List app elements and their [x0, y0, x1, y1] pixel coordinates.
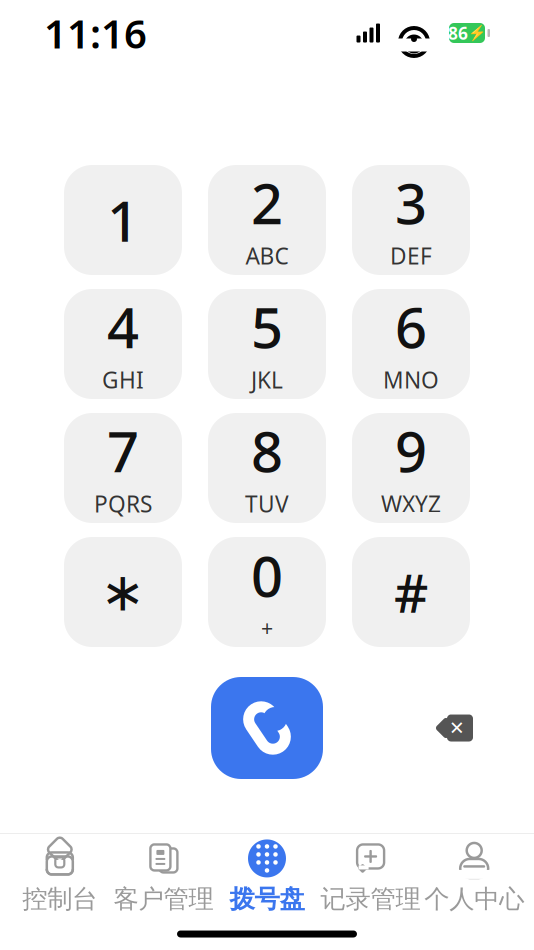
staticText: TUV: [245, 489, 289, 519]
staticText: 拨号盘: [229, 883, 304, 914]
staticText: 11:16: [44, 6, 147, 59]
staticText: 8: [251, 413, 283, 488]
staticText: +: [261, 613, 273, 642]
staticText: GHI: [102, 365, 144, 395]
staticText: ABC: [245, 241, 288, 271]
button[interactable]: 记录管理: [319, 831, 422, 920]
button[interactable]: 个人中心: [422, 831, 526, 920]
button[interactable]: #: [352, 537, 470, 647]
staticText: 记录管理: [321, 883, 421, 914]
staticText: 客户管理: [113, 883, 213, 914]
staticText: 0: [251, 538, 283, 613]
staticText: #: [394, 557, 428, 627]
staticText: 9: [395, 413, 427, 488]
staticText: PQRS: [94, 489, 152, 519]
button[interactable]: 5: [208, 289, 326, 399]
staticText: DEF: [390, 241, 432, 271]
staticText: MNO: [383, 365, 439, 395]
button[interactable]: 控制台: [8, 831, 112, 920]
staticText: 2: [251, 165, 283, 240]
staticText: 6: [395, 289, 427, 364]
button[interactable]: 9: [352, 413, 470, 523]
staticText: 1: [107, 183, 139, 257]
button[interactable]: 6: [352, 289, 470, 399]
staticText: 个人中心: [424, 883, 524, 914]
button[interactable]: 3: [352, 165, 470, 275]
button[interactable]: 2: [208, 165, 326, 275]
staticText: 7: [107, 413, 139, 488]
staticText: WXYZ: [381, 489, 441, 519]
staticText: 控制台: [22, 883, 97, 914]
staticText: JKL: [251, 365, 283, 395]
button[interactable]: Call: [211, 677, 323, 779]
staticText: ✕: [449, 717, 465, 739]
staticText: ∗: [100, 562, 145, 622]
staticText: 86: [448, 21, 468, 44]
button[interactable]: 拨号盘: [215, 831, 319, 920]
button[interactable]: 0: [208, 537, 326, 647]
staticText: 5: [251, 289, 283, 364]
staticText: ⚡: [468, 25, 486, 41]
staticText: 4: [107, 289, 139, 364]
button[interactable]: ∗: [64, 537, 182, 647]
button[interactable]: 7: [64, 413, 182, 523]
button[interactable]: 8: [208, 413, 326, 523]
button[interactable]: 4: [64, 289, 182, 399]
staticText: 3: [395, 165, 427, 240]
button[interactable]: Delete: [422, 706, 482, 750]
button[interactable]: 客户管理: [112, 831, 215, 920]
button[interactable]: 1: [64, 165, 182, 275]
